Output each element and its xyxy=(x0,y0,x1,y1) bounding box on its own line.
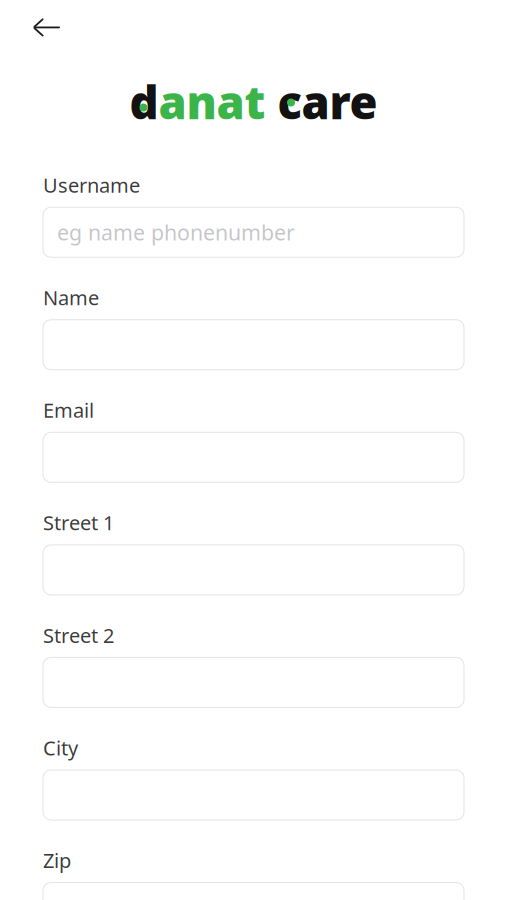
staticText: are xyxy=(301,71,377,132)
staticText: Email xyxy=(43,397,94,423)
staticText: anat xyxy=(158,71,265,132)
staticText: Street 2 xyxy=(43,622,114,648)
staticText: Name xyxy=(43,284,99,311)
staticText: Street 1 xyxy=(43,509,114,536)
button[interactable]: Back xyxy=(25,7,69,47)
staticText: Username xyxy=(43,172,140,198)
staticText: Zip xyxy=(43,847,71,874)
staticText: eg name phonenumber xyxy=(57,218,295,246)
button[interactable] xyxy=(43,432,464,482)
button[interactable]: eg name phonenumber xyxy=(43,207,464,257)
staticText: d xyxy=(129,71,158,132)
button[interactable] xyxy=(43,545,464,595)
staticText: c xyxy=(277,71,301,132)
button[interactable] xyxy=(43,657,464,707)
staticText: City xyxy=(43,734,78,761)
button[interactable] xyxy=(43,320,464,370)
